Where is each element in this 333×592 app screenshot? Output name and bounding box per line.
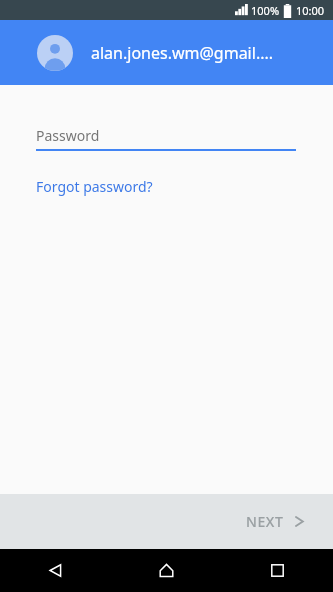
staticText: 10:00 — [296, 3, 325, 18]
button[interactable]: Home — [111, 549, 222, 592]
staticText: Forgot password? — [36, 177, 153, 196]
staticText: NEXT — [246, 512, 284, 531]
staticText: 100% — [251, 3, 280, 18]
button[interactable]: Password — [36, 124, 296, 147]
button[interactable]: NEXT — [226, 502, 333, 541]
button[interactable]: Recent apps — [222, 549, 333, 592]
button[interactable]: Back — [0, 549, 111, 592]
button[interactable]: alan.jones.wm@gmail.... — [0, 20, 333, 85]
staticText: Password — [36, 126, 100, 145]
button[interactable]: Forgot password? — [36, 177, 153, 196]
staticText: alan.jones.wm@gmail.... — [91, 42, 274, 64]
